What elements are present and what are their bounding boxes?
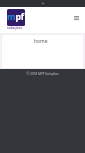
staticText: home — [34, 38, 48, 45]
staticText: © 2018 MPF Soluções — [26, 72, 59, 76]
button[interactable]: Open navigation menu — [71, 13, 81, 23]
staticText: mpf — [7, 11, 25, 23]
staticText: soluções — [7, 25, 23, 30]
